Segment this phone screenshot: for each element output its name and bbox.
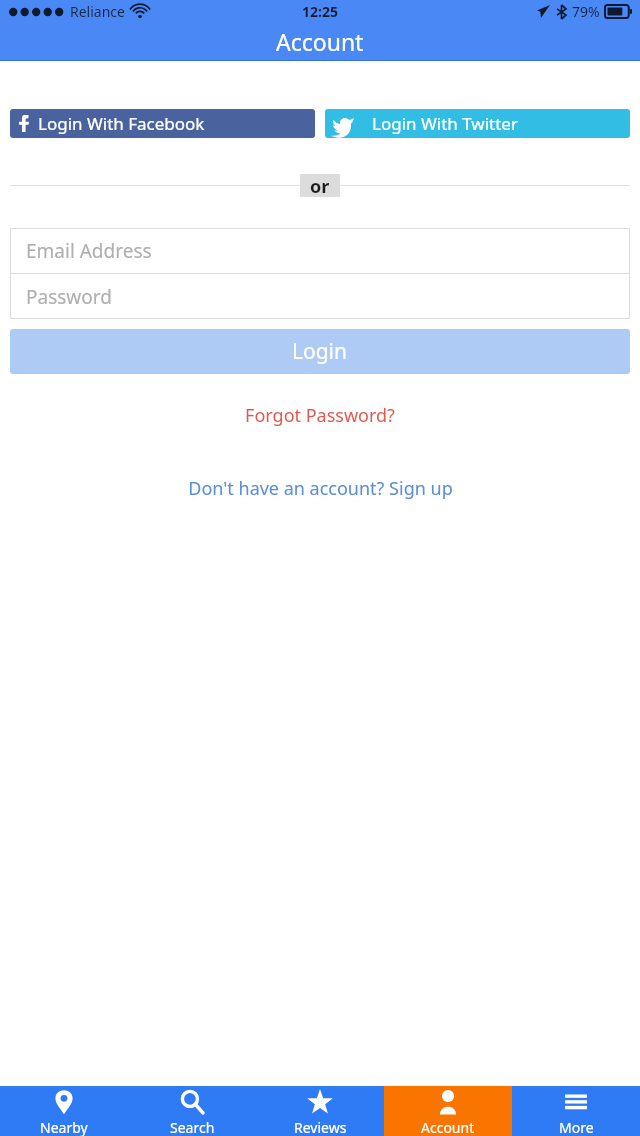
button[interactable]: Don't have an account? Sign up (180, 472, 461, 505)
button[interactable]: Email Address (10, 228, 630, 273)
staticText: More (559, 1118, 594, 1136)
button[interactable]: Password (10, 274, 630, 319)
staticText: Reviews (294, 1118, 347, 1136)
button[interactable]: Forgot Password? (237, 399, 403, 432)
button[interactable]: Nearby (0, 1086, 128, 1136)
staticText: Account (276, 26, 364, 57)
staticText: 12:25 (302, 2, 338, 21)
button[interactable]: More (512, 1086, 640, 1136)
staticText: Search (170, 1118, 215, 1136)
button[interactable]: Login With Facebook (10, 109, 315, 138)
staticText: or (310, 174, 330, 197)
button[interactable]: Search (128, 1086, 256, 1136)
staticText: Password (26, 284, 112, 310)
staticText: Forgot Password? (245, 403, 395, 428)
staticText: Don't have an account? Sign up (188, 476, 453, 501)
staticText: Login With Twitter (372, 112, 518, 135)
staticText: Email Address (26, 238, 152, 264)
staticText: Account (421, 1118, 475, 1136)
staticText: Reliance (70, 2, 125, 21)
staticText: Login With Facebook (38, 112, 205, 135)
button[interactable]: Login (10, 329, 630, 374)
button[interactable]: Reviews (256, 1086, 384, 1136)
staticText: Nearby (40, 1118, 88, 1136)
button[interactable]: Account (384, 1086, 512, 1136)
staticText: Login (292, 337, 348, 366)
staticText: 79% (572, 2, 600, 21)
button[interactable]: Login With Twitter (325, 109, 630, 138)
